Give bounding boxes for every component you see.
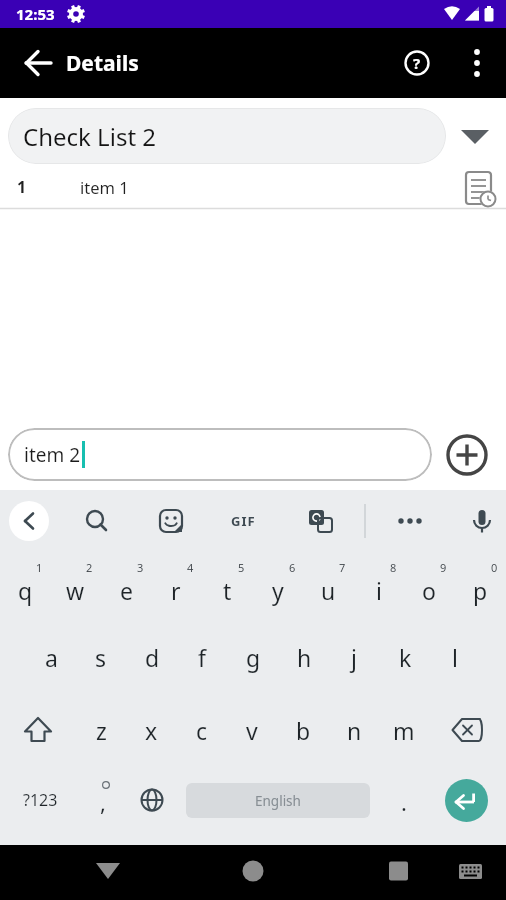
staticText: 2 bbox=[86, 560, 93, 575]
staticText: c bbox=[196, 715, 208, 746]
staticText: 8 bbox=[390, 560, 397, 575]
staticText: Check List 2 bbox=[23, 120, 157, 153]
staticText: j bbox=[351, 642, 357, 673]
staticText: 12:53 bbox=[16, 4, 55, 24]
staticText: e bbox=[120, 575, 133, 606]
staticText: m bbox=[393, 715, 415, 746]
staticText: t bbox=[223, 575, 232, 606]
staticText: q bbox=[18, 575, 33, 606]
staticText: item 1 bbox=[80, 176, 129, 198]
staticText: x bbox=[145, 715, 158, 746]
staticText: l bbox=[452, 642, 458, 673]
staticText: y bbox=[272, 575, 284, 606]
staticText: h bbox=[297, 642, 312, 673]
staticText: English bbox=[255, 792, 301, 810]
staticText: p bbox=[473, 575, 488, 606]
staticText: b bbox=[296, 715, 311, 746]
staticText: k bbox=[399, 642, 412, 673]
staticText: v bbox=[246, 715, 258, 746]
staticText: 5 bbox=[238, 560, 245, 575]
staticText: 1 bbox=[17, 176, 27, 198]
staticText: o bbox=[422, 575, 436, 606]
staticText: u bbox=[321, 575, 336, 606]
staticText: 6 bbox=[289, 560, 296, 575]
staticText: ?123 bbox=[23, 789, 58, 811]
staticText: . bbox=[401, 787, 407, 817]
staticText: item 2 bbox=[24, 442, 81, 468]
staticText: i bbox=[376, 575, 382, 606]
staticText: GIF bbox=[231, 512, 256, 530]
staticText: 1 bbox=[36, 560, 43, 575]
staticText: Details bbox=[66, 49, 139, 78]
staticText: n bbox=[347, 715, 362, 746]
staticText: a bbox=[45, 642, 58, 673]
staticText: z bbox=[96, 715, 107, 746]
staticText: g bbox=[246, 642, 261, 673]
staticText: 0 bbox=[491, 560, 498, 575]
staticText: r bbox=[171, 575, 181, 606]
staticText: 7 bbox=[339, 560, 346, 575]
staticText: d bbox=[145, 642, 160, 673]
staticText: s bbox=[95, 642, 107, 673]
staticText: 3 bbox=[137, 560, 144, 575]
staticText: ? bbox=[413, 53, 421, 73]
staticText: 4 bbox=[187, 560, 194, 575]
staticText: w bbox=[66, 575, 85, 606]
staticText: , bbox=[100, 787, 106, 817]
staticText: f bbox=[198, 642, 206, 673]
staticText: 9 bbox=[440, 560, 447, 575]
